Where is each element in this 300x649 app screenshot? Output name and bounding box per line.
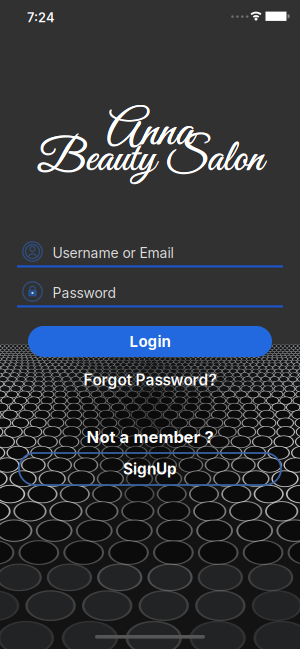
button[interactable]: SignUp — [19, 453, 281, 485]
staticText: Anna — [107, 102, 194, 164]
staticText: Password — [52, 285, 115, 301]
button[interactable] — [17, 272, 283, 308]
staticText: Beauty Salon — [37, 132, 263, 188]
staticText: Login — [129, 332, 170, 351]
button[interactable] — [17, 232, 283, 268]
staticText: SignUp — [123, 460, 177, 478]
staticText: Username or Email — [52, 245, 173, 261]
button[interactable]: Forgot Password? — [0, 370, 300, 389]
staticText: 7:24 — [27, 10, 55, 25]
button[interactable]: Login — [28, 326, 272, 357]
staticText: Not a member ? — [86, 427, 213, 447]
staticText: Anna — [106, 102, 193, 164]
staticText: Beauty Salon — [37, 131, 263, 188]
staticText: Anna — [106, 102, 193, 164]
staticText: Beauty Salon — [37, 131, 263, 188]
staticText: Forgot Password? — [83, 370, 216, 389]
